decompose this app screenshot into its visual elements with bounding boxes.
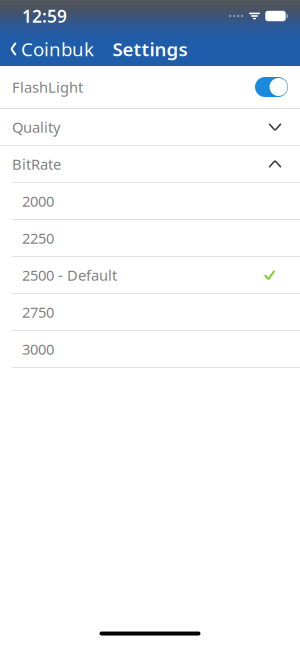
button[interactable]: 2000 (0, 183, 300, 219)
button[interactable]: BitRate (0, 146, 300, 182)
button[interactable]: 2250 (0, 220, 300, 256)
staticText: 2750 (22, 302, 54, 322)
staticText: BitRate (12, 154, 61, 174)
staticText: 2000 (22, 191, 54, 211)
staticText: Settings (112, 37, 187, 61)
staticText: 2500 - Default (22, 265, 117, 285)
staticText: 12:59 (22, 4, 67, 27)
staticText: 2250 (22, 228, 54, 248)
staticText: Quality (12, 117, 60, 137)
button[interactable]: 3000 (0, 331, 300, 367)
staticText: FlashLight (12, 77, 83, 97)
button[interactable]: Quality (0, 109, 300, 145)
button[interactable]: FlashLight (0, 66, 300, 108)
staticText: Coinbuk (21, 37, 94, 61)
button[interactable]: Coinbuk (0, 34, 102, 64)
staticText: 3000 (22, 339, 54, 359)
button[interactable]: 2750 (0, 294, 300, 330)
button[interactable]: 2500 - Default (0, 257, 300, 293)
